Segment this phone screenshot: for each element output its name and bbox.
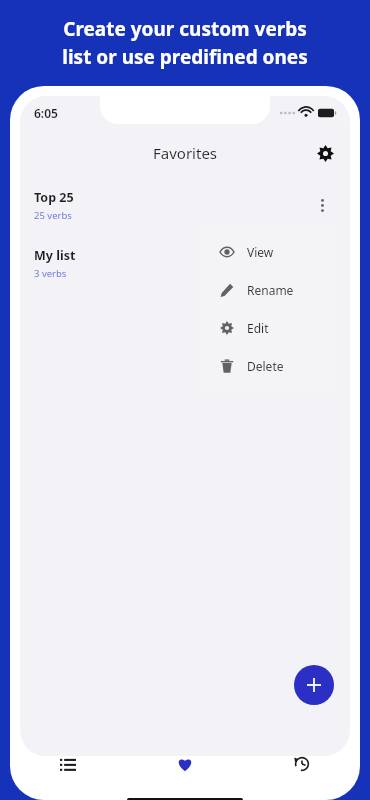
staticText: View: [247, 244, 274, 260]
button[interactable]: Rename: [202, 271, 338, 309]
staticText: 6:05: [34, 105, 58, 121]
staticText: Edit: [247, 320, 269, 336]
staticText: Create your custom verbs: [63, 16, 307, 42]
staticText: Top 25: [34, 189, 74, 206]
staticText: list or use predifined ones: [62, 44, 308, 70]
button[interactable]: Edit: [202, 309, 338, 347]
staticText: Delete: [247, 358, 284, 374]
button[interactable]: History: [243, 742, 360, 786]
button[interactable]: Lists: [10, 742, 126, 786]
button[interactable]: My list: [20, 234, 350, 292]
staticText: Favorites: [153, 143, 218, 163]
staticText: 25 verbs: [34, 209, 72, 222]
button[interactable]: Top 25: [20, 176, 350, 234]
staticText: 3 verbs: [34, 267, 67, 280]
button[interactable]: Add list: [294, 665, 334, 705]
button[interactable]: View: [202, 233, 338, 271]
button[interactable]: Favorites: [126, 742, 243, 786]
staticText: My list: [34, 247, 76, 264]
staticText: Rename: [247, 282, 294, 298]
button[interactable]: Settings: [308, 136, 342, 170]
button[interactable]: Delete: [202, 347, 338, 385]
button[interactable]: More options: [308, 191, 336, 219]
